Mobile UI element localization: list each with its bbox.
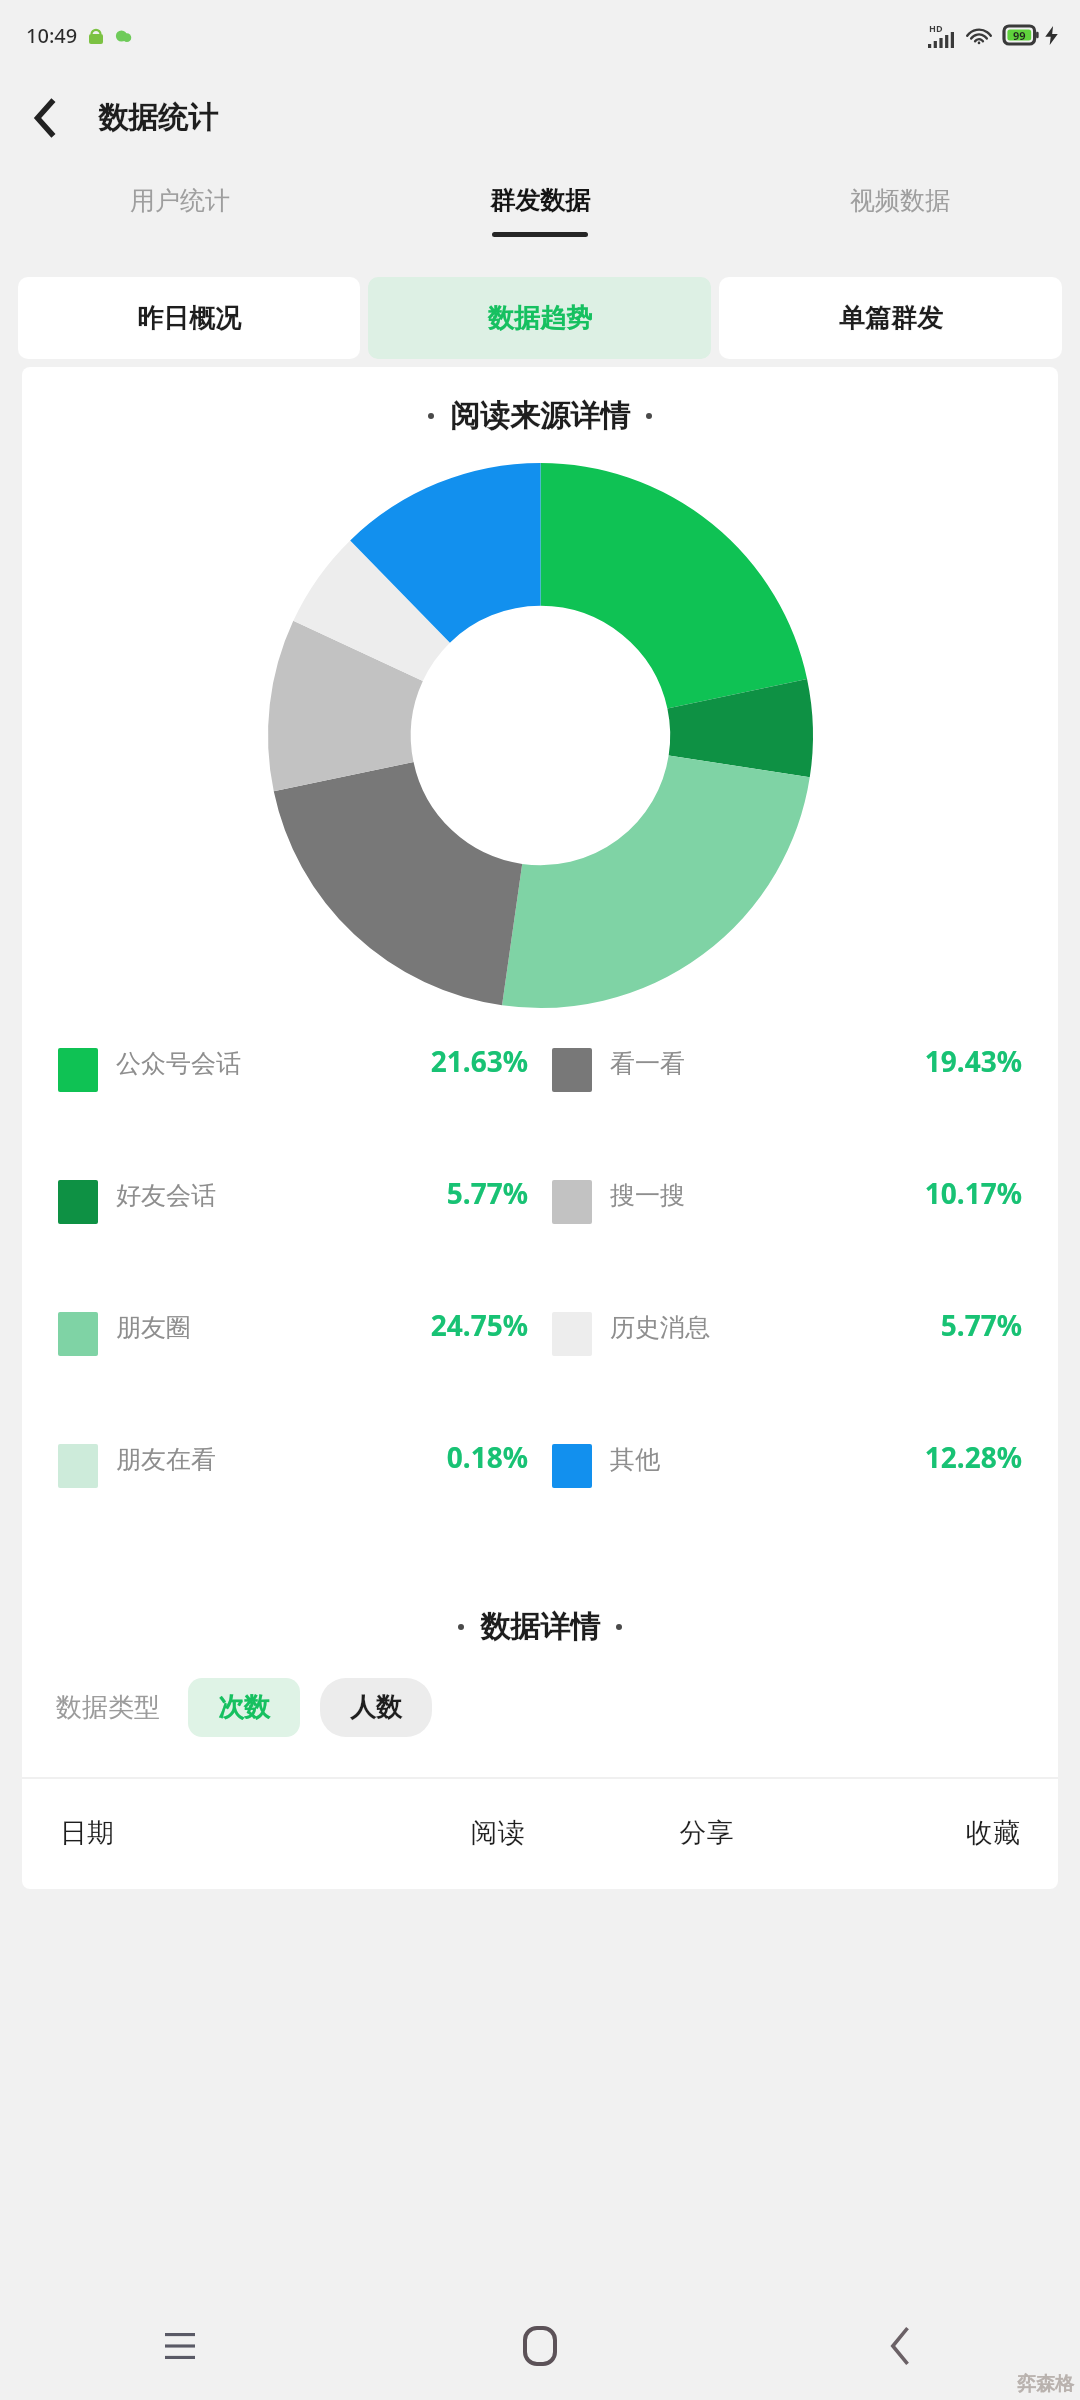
staticText: 21.63% [423,1042,528,1080]
button[interactable]: 看一看 [552,1042,1022,1152]
button[interactable]: 人数 [320,1678,432,1737]
staticText: 其他 [610,1444,911,1475]
staticText: 24.75% [423,1306,528,1344]
staticText: 收藏 [811,1816,1020,1850]
button[interactable]: 昨日概况 [18,277,360,359]
staticText: 群发数据 [490,185,590,216]
staticText: 朋友圈 [116,1312,417,1343]
staticText: 0.18% [423,1438,528,1476]
staticText: 次数 [218,1691,270,1724]
staticText: 搜一搜 [610,1180,911,1211]
button[interactable]: Back [16,89,74,147]
button[interactable]: 用户统计 [0,165,360,277]
staticText: 阅读来源详情 [450,397,630,435]
staticText: 昨日概况 [137,302,241,335]
staticText: 5.77% [917,1306,1022,1344]
staticText: 99 [1013,28,1026,43]
button[interactable]: 历史消息 [552,1306,1022,1416]
button[interactable]: 视频数据 [720,165,1080,277]
staticText: 单篇群发 [839,302,943,335]
staticText: 公众号会话 [116,1048,417,1079]
staticText: 5.77% [423,1174,528,1212]
button[interactable]: 群发数据 [360,165,720,277]
button[interactable]: 次数 [188,1678,300,1737]
staticText: 分享 [602,1816,811,1850]
staticText: 看一看 [610,1048,911,1079]
button[interactable]: 其他 [552,1438,1022,1548]
staticText: 人数 [350,1691,402,1724]
button[interactable]: 搜一搜 [552,1174,1022,1284]
staticText: 数据详情 [480,1608,600,1646]
staticText: 历史消息 [610,1312,911,1343]
staticText: 视频数据 [850,185,950,216]
staticText: 10.17% [917,1174,1022,1212]
staticText: 日期 [60,1816,393,1850]
button[interactable]: Back [720,2292,1080,2400]
button[interactable]: 朋友圈 [58,1306,528,1416]
staticText: 用户统计 [130,185,230,216]
button[interactable]: Home [360,2292,720,2400]
staticText: 朋友在看 [116,1444,417,1475]
button[interactable]: 公众号会话 [58,1042,528,1152]
staticText: 12.28% [917,1438,1022,1476]
staticText: 弈森格 [1017,2372,1074,2396]
staticText: 数据统计 [98,99,218,137]
staticText: HD [929,22,943,34]
button[interactable]: Recents [0,2292,360,2400]
button[interactable]: 单篇群发 [719,277,1062,359]
staticText: 阅读 [393,1816,602,1850]
staticText: 数据类型 [56,1691,160,1724]
button[interactable]: 朋友在看 [58,1438,528,1548]
staticText: 10:49 [26,22,78,49]
staticText: 好友会话 [116,1180,417,1211]
button[interactable]: 好友会话 [58,1174,528,1284]
button[interactable]: 数据趋势 [368,277,711,359]
staticText: 19.43% [917,1042,1022,1080]
staticText: 数据趋势 [488,302,592,335]
